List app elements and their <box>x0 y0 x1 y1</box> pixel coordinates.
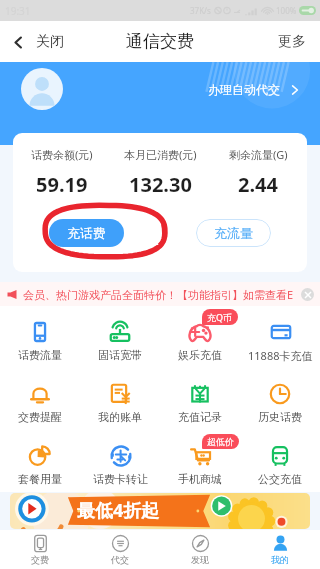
staticText: 充话费 <box>67 225 106 241</box>
button[interactable]: 话费卡转让 <box>80 430 160 492</box>
staticText: 剩余流量(G) <box>229 147 288 162</box>
button[interactable]: Close notice <box>301 288 314 301</box>
staticText: 100% <box>276 5 297 16</box>
staticText: 代交 <box>111 554 129 565</box>
button[interactable]: 固话宽带 <box>80 306 160 368</box>
staticText: 132.30 <box>129 171 192 198</box>
other: Back <box>11 35 26 50</box>
staticText: 本月已消费(元) <box>124 147 197 162</box>
button[interactable]: 超低价 <box>160 430 240 492</box>
staticText: 娱乐充值 <box>178 348 222 362</box>
button[interactable]: 我的 <box>240 530 320 569</box>
staticText: 手机商城 <box>178 472 222 486</box>
button[interactable]: 11888卡充值 <box>240 306 320 368</box>
staticText: 历史话费 <box>258 410 302 424</box>
button[interactable]: 充值记录 <box>160 368 240 430</box>
staticText: 交费 <box>31 554 49 565</box>
staticText: 2.44 <box>238 171 278 198</box>
staticText: 交费提醒 <box>18 410 62 424</box>
staticText: 11888卡充值 <box>248 348 313 363</box>
staticText: 37K/s <box>190 5 211 16</box>
button[interactable]: 历史话费 <box>240 368 320 430</box>
staticText: 套餐用量 <box>18 472 62 486</box>
button[interactable]: Back <box>0 27 72 57</box>
staticText: 通信交费 <box>126 31 194 52</box>
staticText: 固话宽带 <box>98 348 142 362</box>
button[interactable]: 交费 <box>0 530 80 569</box>
staticText: 关闭 <box>36 33 64 51</box>
staticText: 充Q币 <box>207 311 233 323</box>
button[interactable]: Profile <box>21 68 63 110</box>
button[interactable]: 充流量 <box>196 219 271 247</box>
staticText: 充流量 <box>214 225 253 241</box>
staticText: 话费卡转让 <box>93 472 148 486</box>
button[interactable]: 公交充值 <box>240 430 320 492</box>
staticText: 会员、热门游戏产品全面特价！【功能指引】如需查看E <box>23 287 294 302</box>
staticText: 话费余额(元) <box>31 147 93 162</box>
staticText: 办理自动代交 <box>208 82 280 97</box>
staticText: 发现 <box>191 554 209 565</box>
button[interactable]: 套餐用量 <box>0 430 80 492</box>
button[interactable]: 办理自动代交 <box>204 78 305 101</box>
button[interactable]: 交费提醒 <box>0 368 80 430</box>
staticText: 公交充值 <box>258 472 302 486</box>
button[interactable]: 发现 <box>160 530 240 569</box>
staticText: 最低4折起 <box>77 498 160 523</box>
staticText: 超低价 <box>207 436 234 447</box>
button[interactable]: 我的账单 <box>80 368 160 430</box>
staticText: 充值记录 <box>178 410 222 424</box>
staticText: 59.19 <box>36 171 88 198</box>
button[interactable]: 最低4折起 <box>10 493 310 529</box>
button[interactable]: 代交 <box>80 530 160 569</box>
button[interactable]: 话费流量 <box>0 306 80 368</box>
button[interactable]: 充话费 <box>49 219 124 247</box>
staticText: 话费流量 <box>18 348 62 362</box>
staticText: 我的账单 <box>98 410 142 424</box>
button[interactable]: 更多 <box>264 25 320 59</box>
button[interactable]: 充Q币 <box>160 306 240 368</box>
staticText: 我的 <box>271 554 289 565</box>
